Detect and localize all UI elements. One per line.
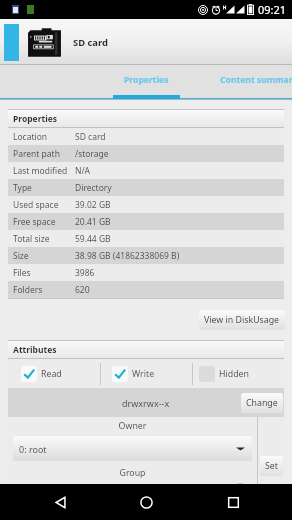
staticText: View in DiskUsage — [204, 314, 280, 326]
staticText: Content summary — [220, 74, 292, 86]
staticText: 3986 — [75, 267, 95, 279]
staticText: Free space — [13, 216, 75, 228]
staticText: Total size — [13, 233, 75, 245]
staticText: Location — [13, 131, 75, 143]
staticText: drwxrwx--x — [122, 397, 170, 409]
button[interactable]: 0: root — [13, 483, 252, 484]
staticText: Properties — [13, 113, 58, 125]
staticText: 39.02 GB — [75, 199, 111, 211]
staticText: 20.41 GB — [75, 216, 111, 228]
staticText: Files — [13, 267, 75, 279]
button[interactable]: Properties — [113, 65, 180, 95]
staticText: Directory — [75, 182, 112, 194]
staticText: Change — [246, 397, 278, 409]
button[interactable]: Home — [119, 484, 173, 520]
staticText: Parent path — [13, 148, 75, 160]
staticText: SD card — [73, 36, 108, 49]
button[interactable]: Write — [112, 366, 155, 382]
staticText: Last modified — [13, 165, 75, 177]
staticText: Hidden — [219, 368, 250, 380]
staticText: N/A — [75, 165, 91, 177]
staticText: 620 — [75, 284, 90, 296]
staticText: Set — [265, 460, 278, 472]
button[interactable]: Set — [260, 456, 283, 476]
button[interactable]: Change — [241, 393, 283, 413]
staticText: SD card — [75, 131, 106, 143]
button[interactable]: Hidden — [199, 366, 250, 382]
button[interactable]: Back — [33, 484, 87, 520]
button[interactable]: Recent apps — [206, 484, 260, 520]
staticText: Type — [13, 182, 75, 194]
staticText: 59.44 GB — [75, 233, 111, 245]
staticText: Group — [8, 467, 257, 479]
staticText: 09:21 — [258, 2, 287, 17]
staticText: /storage — [75, 148, 109, 160]
staticText: Owner — [8, 420, 257, 432]
button[interactable]: Read — [21, 366, 62, 382]
staticText: Folders — [13, 284, 75, 296]
button[interactable]: View in DiskUsage — [199, 310, 285, 330]
staticText: Read — [41, 368, 62, 380]
staticText: Properties — [124, 74, 169, 86]
staticText: Write — [132, 368, 155, 380]
staticText: Size — [13, 250, 75, 262]
staticText: Used space — [13, 199, 75, 211]
button[interactable]: Content summary — [180, 65, 292, 95]
button[interactable]: 0: root — [13, 436, 252, 461]
staticText: 38.98 GB (41862338069 B) — [75, 250, 180, 262]
staticText: 0: root — [19, 443, 236, 455]
staticText: Attributes — [13, 344, 57, 356]
